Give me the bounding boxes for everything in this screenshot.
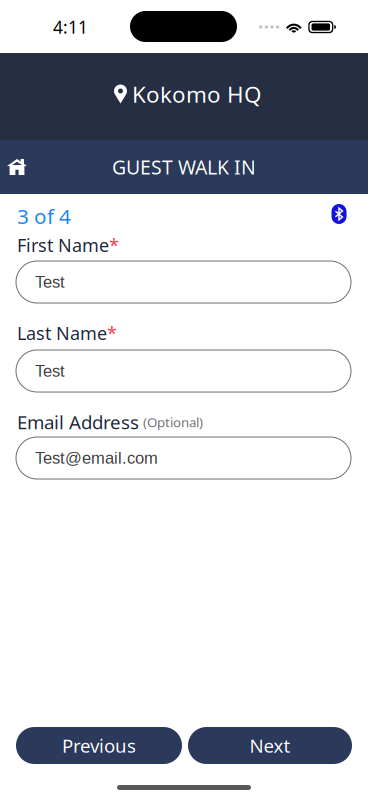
staticText: Test	[35, 362, 65, 380]
staticText: 4:11	[53, 15, 88, 39]
staticText: *	[107, 321, 117, 345]
button[interactable]: Test	[16, 261, 351, 303]
staticText: Last Name	[17, 321, 107, 345]
button[interactable]: Home	[0, 140, 45, 194]
staticText: Kokomo HQ	[132, 79, 261, 109]
button[interactable]: Previous	[16, 727, 182, 764]
staticText: Email Address	[17, 409, 139, 435]
button[interactable]: Next	[188, 727, 352, 764]
staticText: 3 of 4	[17, 202, 71, 230]
staticText: *	[109, 233, 119, 257]
staticText: Previous	[62, 733, 136, 758]
button[interactable]: Test@email.com	[16, 437, 351, 479]
button[interactable]: Bluetooth	[326, 198, 352, 230]
staticText: Test@email.com	[35, 449, 158, 467]
staticText: First Name	[17, 233, 109, 257]
staticText: (Optional)	[143, 413, 203, 431]
staticText: Test	[35, 273, 65, 291]
staticText: Next	[249, 733, 290, 758]
button[interactable]: Test	[16, 350, 351, 392]
staticText: GUEST WALK IN	[112, 154, 256, 180]
